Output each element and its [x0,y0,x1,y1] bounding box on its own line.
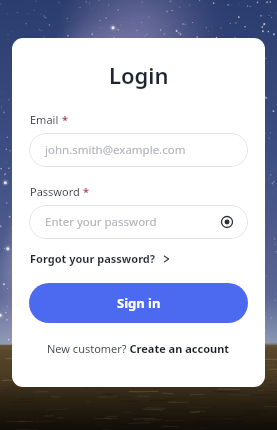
staticText: * [83,184,89,199]
staticText: New customer? Create an account [47,341,230,356]
staticText: Login [109,60,169,90]
staticText: Password [30,184,80,199]
button[interactable]: Enter your password [29,205,248,239]
staticText: Forgot your password? [30,251,156,266]
button[interactable]: john.smith@example.com [29,133,248,167]
button[interactable]: Sign in [29,283,248,323]
button[interactable]: New customer? Create an account [43,339,234,358]
staticText: Email [30,112,59,127]
button[interactable]: Forgot your password? [30,249,170,268]
button[interactable]: Show password [218,213,236,231]
staticText: Enter your password [45,214,157,230]
staticText: john.smith@example.com [45,142,186,158]
staticText: Sign in [117,294,161,312]
staticText: * [62,112,68,127]
